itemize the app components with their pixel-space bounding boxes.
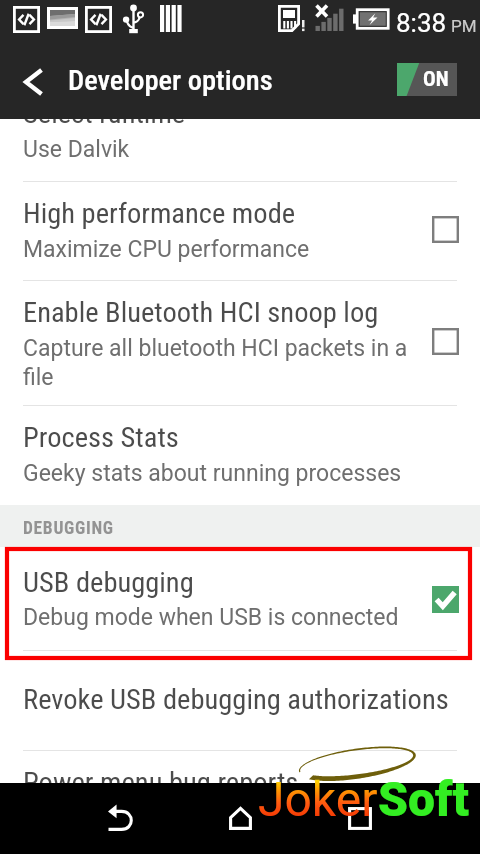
staticText: 8:38 — [396, 8, 447, 38]
staticText: USB debugging — [23, 566, 194, 599]
staticText: ON — [423, 67, 449, 92]
button[interactable]: ON — [397, 63, 457, 96]
staticText: Revoke USB debugging authorizations — [23, 683, 449, 716]
staticText: DEBUGGING — [23, 518, 114, 539]
button[interactable] — [0, 182, 480, 280]
staticText: Joker — [258, 771, 378, 827]
staticText: Geeky stats about running processes — [23, 460, 402, 487]
staticText: High performance mode — [23, 197, 296, 230]
staticText: Process Stats — [23, 421, 179, 454]
button[interactable]: Back — [31, 783, 211, 854]
staticText: Select runtime — [23, 97, 186, 130]
staticText: Capture all bluetooth HCI packets in a f… — [23, 335, 419, 391]
staticText: Developer options — [68, 64, 273, 97]
staticText: Soft — [378, 771, 469, 827]
staticText: PM — [451, 16, 477, 36]
staticText: Maximize CPU performance — [23, 236, 310, 263]
button[interactable] — [0, 406, 480, 505]
button[interactable]: Home — [180, 783, 300, 854]
staticText: Enable Bluetooth HCI snoop log — [23, 296, 379, 329]
staticText: Use Dalvik — [23, 136, 130, 163]
button[interactable]: Back — [0, 48, 64, 119]
button[interactable]: Recents — [270, 783, 450, 854]
button[interactable] — [0, 281, 480, 405]
button[interactable] — [0, 651, 480, 750]
staticText: Power menu bug reports — [23, 766, 299, 799]
button[interactable] — [0, 548, 480, 650]
staticText: Debug mode when USB is connected — [23, 604, 399, 631]
